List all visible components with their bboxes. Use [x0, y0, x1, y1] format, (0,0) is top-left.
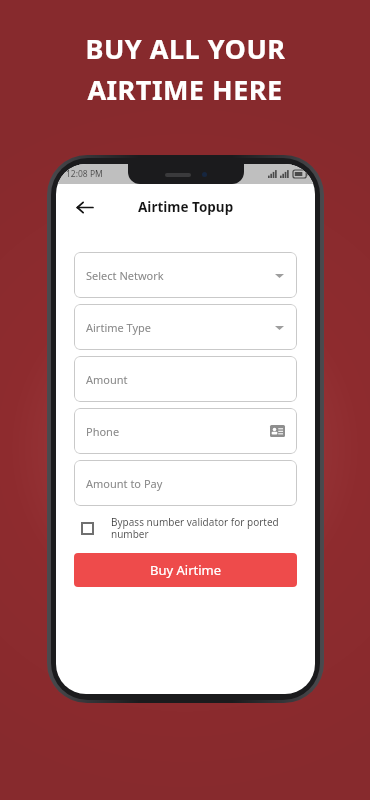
staticText: BUY ALL YOUR [85, 30, 286, 67]
button[interactable]: Phone [74, 408, 297, 454]
staticText: AIRTIME HERE [87, 71, 283, 108]
staticText: Amount [86, 372, 128, 387]
staticText: 12:08 PM [66, 168, 103, 180]
button[interactable]: Airtime Type [74, 304, 297, 350]
button[interactable]: Back [68, 191, 100, 223]
staticText: Select Network [86, 268, 164, 283]
button[interactable]: Amount to Pay [74, 460, 297, 506]
staticText: Airtime Type [86, 320, 152, 335]
button[interactable]: Amount [74, 356, 297, 402]
staticText: Amount to Pay [86, 476, 163, 491]
staticText: Bypass number validator for ported numbe… [111, 515, 297, 541]
button[interactable]: Buy Airtime [74, 553, 297, 587]
button[interactable]: Select Network [74, 252, 297, 298]
staticText: Phone [86, 424, 120, 439]
staticText: Buy Airtime [150, 561, 222, 579]
staticText: Airtime Topup [138, 198, 234, 216]
button[interactable]: Bypass number validator for ported numbe… [81, 515, 297, 541]
